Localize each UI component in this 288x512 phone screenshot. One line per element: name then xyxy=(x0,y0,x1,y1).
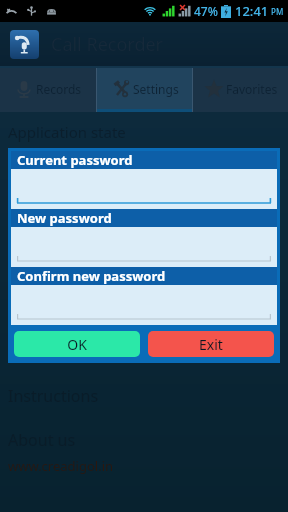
staticText: 47% xyxy=(194,3,218,19)
staticText: 12:41 xyxy=(235,2,269,20)
button[interactable]: Exit xyxy=(148,331,274,357)
staticText: Records xyxy=(36,81,82,97)
button[interactable]: OK xyxy=(14,331,140,357)
button[interactable] xyxy=(11,169,277,209)
staticText: New password xyxy=(17,209,112,227)
button[interactable]: Settings xyxy=(97,68,192,112)
button[interactable]: Favorites xyxy=(193,68,288,112)
staticText: Application state xyxy=(8,122,126,142)
staticText: Settings xyxy=(133,81,179,97)
staticText: PM xyxy=(271,6,284,17)
staticText: Current password xyxy=(17,151,133,169)
staticText: OK xyxy=(67,335,87,354)
button[interactable] xyxy=(11,285,277,325)
button[interactable]: www.creadigol.in xyxy=(8,457,114,475)
staticText: Favorites xyxy=(226,81,278,97)
button[interactable]: Instructions xyxy=(8,385,99,407)
staticText: Exit xyxy=(199,335,223,354)
staticText: Confirm new password xyxy=(17,267,166,285)
button[interactable] xyxy=(11,227,277,267)
